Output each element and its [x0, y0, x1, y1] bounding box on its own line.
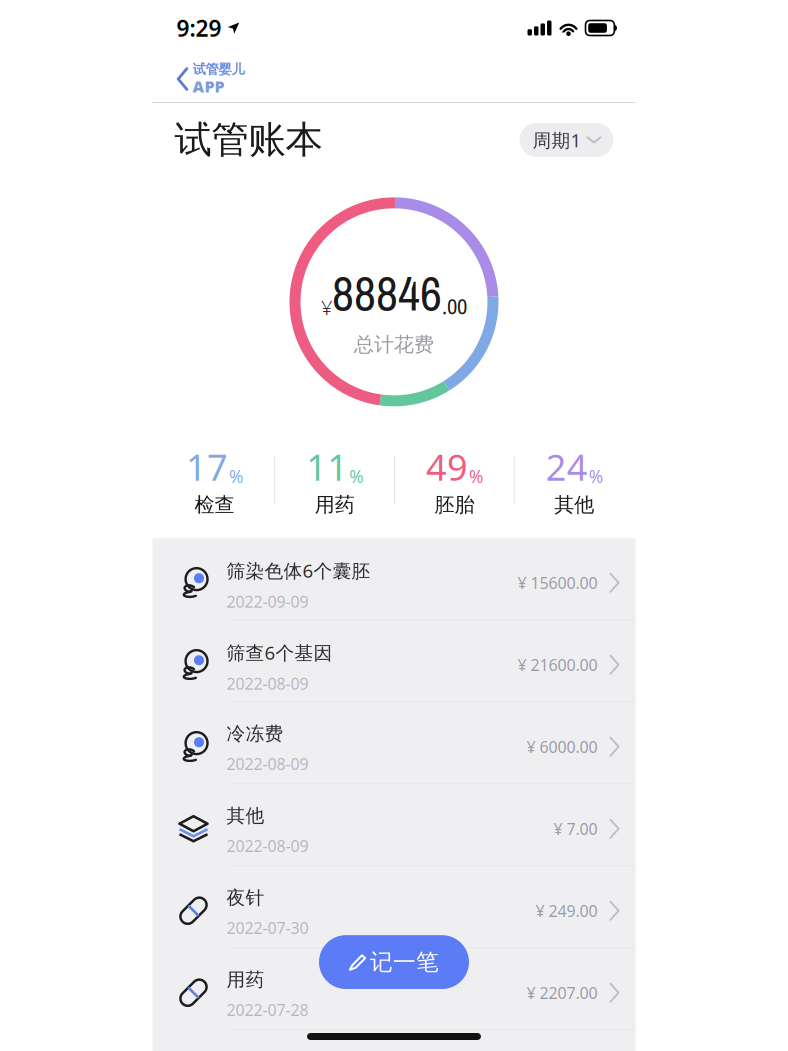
staticText: 记一笔 — [370, 948, 439, 976]
staticText: 2022-08-09 — [226, 673, 308, 694]
staticText: 用药 — [226, 968, 264, 991]
staticText: 17 — [186, 443, 228, 491]
staticText: 2022-08-09 — [226, 835, 308, 856]
button[interactable]: 用药 — [152, 948, 635, 1030]
staticText: ¥ 21600.00 — [517, 654, 597, 675]
staticText: % — [469, 465, 483, 488]
button[interactable]: 其他 — [152, 784, 635, 866]
staticText: ¥ 2207.00 — [526, 982, 597, 1003]
staticText: 筛查6个基因 — [226, 640, 332, 665]
staticText: 9:29 — [176, 13, 221, 43]
button[interactable]: 返回 — [172, 55, 248, 103]
button[interactable]: 周期1 — [519, 123, 613, 157]
staticText: 试管账本 — [174, 117, 322, 163]
button[interactable]: 筛染色体6个囊胚 — [152, 538, 635, 620]
staticText: % — [349, 465, 363, 488]
staticText: % — [229, 465, 243, 488]
staticText: 2022-07-28 — [226, 999, 308, 1020]
staticText: 其他 — [554, 493, 594, 517]
staticText: APP — [192, 76, 224, 97]
staticText: 检查 — [194, 493, 234, 517]
staticText: 筛染色体6个囊胚 — [226, 558, 370, 583]
staticText: 2022-07-30 — [226, 917, 308, 938]
staticText: 总计花费 — [354, 332, 434, 357]
staticText: 2022-09-09 — [226, 591, 308, 612]
staticText: 24 — [546, 443, 588, 491]
staticText: 胚胎 — [434, 493, 474, 517]
button[interactable]: 夜针 — [152, 866, 635, 948]
staticText: % — [589, 465, 603, 488]
staticText: .00 — [442, 291, 467, 321]
staticText: 试管婴儿 — [192, 61, 244, 78]
staticText: 2022-08-09 — [226, 753, 308, 774]
staticText: 11 — [306, 443, 348, 491]
staticText: 用药 — [315, 493, 355, 517]
staticText: ¥ 6000.00 — [526, 736, 597, 757]
staticText: 88846 — [332, 261, 442, 325]
staticText: ¥ 249.00 — [535, 900, 597, 921]
staticText: 其他 — [226, 804, 264, 827]
button[interactable]: 筛查6个基因 — [152, 620, 635, 702]
button[interactable]: 记一笔 — [319, 935, 469, 989]
staticText: 49 — [426, 443, 468, 491]
staticText: 周期1 — [532, 127, 581, 152]
staticText: ¥ 15600.00 — [517, 572, 597, 593]
button[interactable]: 冷冻费 — [152, 702, 635, 784]
staticText: ¥ 7.00 — [553, 818, 597, 839]
staticText: 冷冻费 — [226, 722, 283, 745]
staticText: 夜针 — [226, 886, 264, 909]
staticText: ¥ — [321, 294, 332, 320]
